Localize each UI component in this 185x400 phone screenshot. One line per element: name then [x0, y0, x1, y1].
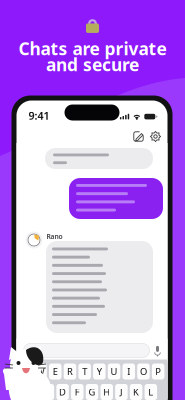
staticText: W [36, 365, 45, 378]
button[interactable]: Dictate [153, 344, 161, 356]
button[interactable]: New chat [132, 130, 144, 142]
staticText: L [148, 386, 153, 398]
staticText: T [82, 365, 87, 378]
staticText: F [75, 386, 80, 398]
button[interactable]: G [86, 384, 98, 400]
button[interactable]: D [56, 384, 69, 400]
staticText: Q [22, 365, 29, 378]
staticText: O [140, 365, 147, 378]
staticText: R [67, 365, 73, 378]
button[interactable]: T [78, 363, 91, 379]
button[interactable]: Settings [149, 130, 161, 142]
button[interactable]: K [130, 384, 142, 400]
button[interactable]: L [145, 384, 157, 400]
staticText: P [155, 365, 161, 378]
button[interactable]: J [115, 384, 128, 400]
staticText: Chats are private [18, 37, 166, 60]
staticText: 9:41 [28, 108, 49, 123]
button[interactable]: P [152, 363, 164, 379]
button[interactable]: S [42, 384, 54, 400]
button[interactable]: U [108, 363, 120, 379]
staticText: K [133, 386, 139, 398]
button[interactable]: R [64, 363, 76, 379]
button[interactable]: W [34, 363, 47, 379]
staticText: G [88, 386, 95, 398]
staticText: D [59, 386, 66, 398]
staticText: Rano [46, 232, 62, 241]
staticText: and secure [46, 53, 139, 76]
button[interactable]: E [49, 363, 61, 379]
staticText: I [127, 365, 130, 378]
staticText: H [103, 386, 110, 398]
button[interactable]: H [100, 384, 113, 400]
staticText: U [110, 365, 117, 378]
button[interactable]: F [71, 384, 83, 400]
staticText: Y [97, 365, 102, 378]
staticText: J [120, 386, 123, 398]
button[interactable]: Y [93, 363, 106, 379]
button[interactable]: Q [20, 363, 32, 379]
button[interactable]: O [137, 363, 150, 379]
staticText: E [53, 365, 58, 378]
button[interactable]: I [122, 363, 135, 379]
